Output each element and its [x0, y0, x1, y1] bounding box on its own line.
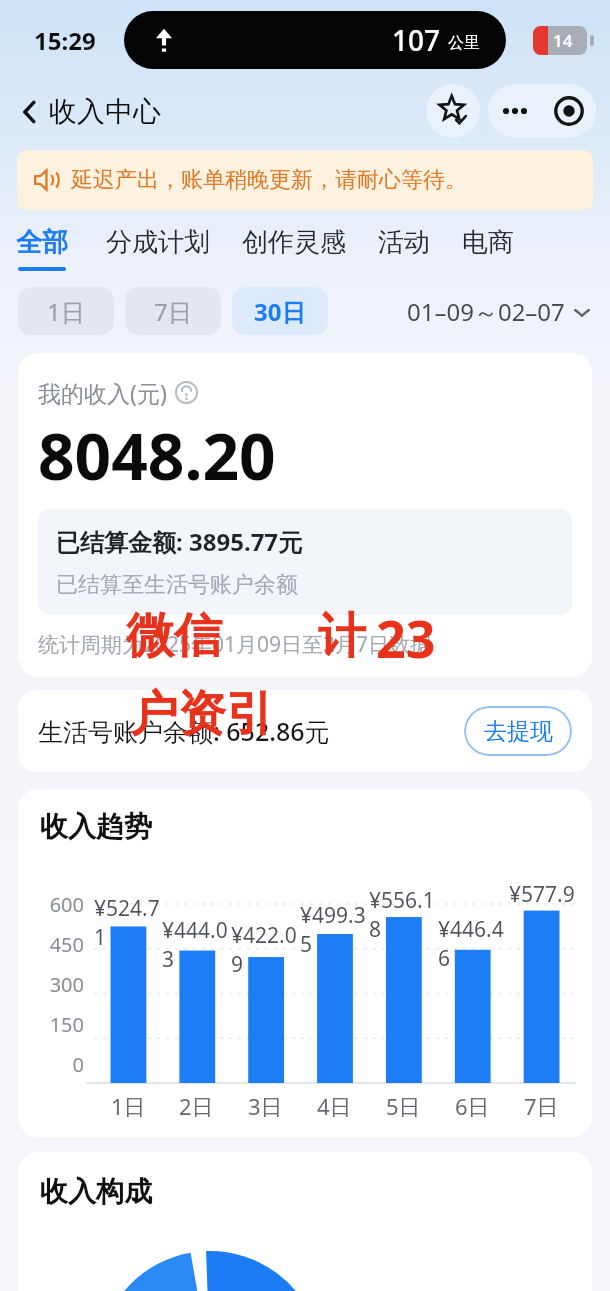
- staticText: 已结算金额: 3895.77元: [56, 525, 303, 558]
- button[interactable]: More options: [488, 84, 542, 138]
- button[interactable]: 全部: [16, 226, 68, 271]
- staticText: 8048.20: [38, 412, 276, 499]
- staticText: 4日: [317, 1091, 352, 1121]
- staticText: 公里: [448, 33, 480, 53]
- staticText: 统计周期为2025年01月09日至2月7日数据: [38, 630, 432, 659]
- other: Back: [14, 96, 46, 128]
- button[interactable]: 延迟产出，账单稍晚更新，请耐心等待。: [17, 150, 593, 210]
- button[interactable]: 已结算金额: 3895.77元: [38, 509, 572, 615]
- button[interactable]: Help: [175, 381, 198, 404]
- button[interactable]: 去提现: [464, 706, 572, 756]
- staticText: 收入中心: [49, 94, 161, 129]
- staticText: 分成计划: [106, 226, 210, 259]
- staticText: 生活号账户余额: 652.86元: [38, 714, 330, 748]
- staticText: 我的收入(元): [38, 377, 167, 408]
- staticText: 延迟产出，账单稍晚更新，请耐心等待。: [71, 166, 467, 194]
- staticText: 1日: [111, 1091, 146, 1121]
- staticText: 户资引: [130, 684, 274, 744]
- staticText: 2日: [179, 1091, 214, 1121]
- button[interactable]: 创作灵感: [242, 226, 346, 267]
- button[interactable]: 电商: [462, 226, 514, 267]
- staticText: 300: [40, 971, 84, 998]
- staticText: 7日: [154, 295, 192, 328]
- button[interactable]: Back: [14, 94, 161, 129]
- staticText: ¥499.35: [300, 901, 369, 959]
- staticText: ¥556.18: [369, 886, 438, 944]
- button[interactable]: 生活号账户余额: 652.86元: [18, 690, 592, 772]
- staticText: 0: [40, 1051, 84, 1078]
- button[interactable]: 7日: [125, 287, 221, 335]
- button[interactable]: Live activity: [124, 11, 506, 69]
- staticText: 5日: [386, 1091, 421, 1121]
- staticText: 6日: [455, 1091, 490, 1121]
- staticText: 已结算至生活号账户余额: [56, 571, 298, 599]
- staticText: 微信: [126, 606, 222, 666]
- button[interactable]: 1日: [18, 287, 114, 335]
- staticText: 去提现: [484, 717, 553, 746]
- staticText: 107: [392, 21, 441, 59]
- staticText: 15:29: [34, 24, 96, 57]
- staticText: 14: [553, 29, 573, 52]
- staticText: ¥577.9: [509, 880, 575, 909]
- staticText: 23: [376, 602, 436, 673]
- staticText: 电商: [462, 226, 514, 259]
- staticText: ¥422.09: [231, 921, 300, 979]
- staticText: 1日: [47, 295, 85, 328]
- button[interactable]: 01–09～02–07: [407, 295, 592, 328]
- button[interactable]: Close: [542, 84, 596, 138]
- staticText: 计: [318, 606, 366, 666]
- staticText: ¥524.71: [94, 894, 162, 952]
- staticText: 活动: [378, 226, 430, 259]
- button[interactable]: 活动: [378, 226, 430, 267]
- staticText: 3日: [248, 1091, 283, 1121]
- staticText: 01–09～02–07: [407, 295, 565, 328]
- staticText: 450: [40, 931, 84, 958]
- staticText: 收入趋势: [40, 809, 152, 844]
- staticText: 600: [40, 891, 84, 918]
- staticText: ¥444.03: [162, 916, 231, 974]
- button[interactable]: 分成计划: [106, 226, 210, 267]
- button[interactable]: 30日: [232, 287, 328, 335]
- staticText: 150: [40, 1011, 84, 1038]
- staticText: 收入构成: [40, 1174, 152, 1209]
- staticText: ¥446.46: [438, 915, 507, 973]
- staticText: 7日: [524, 1091, 559, 1121]
- staticText: 创作灵感: [242, 226, 346, 259]
- staticText: 30日: [254, 295, 306, 328]
- staticText: 全部: [16, 226, 68, 259]
- button[interactable]: Add to favorites: [426, 84, 480, 138]
